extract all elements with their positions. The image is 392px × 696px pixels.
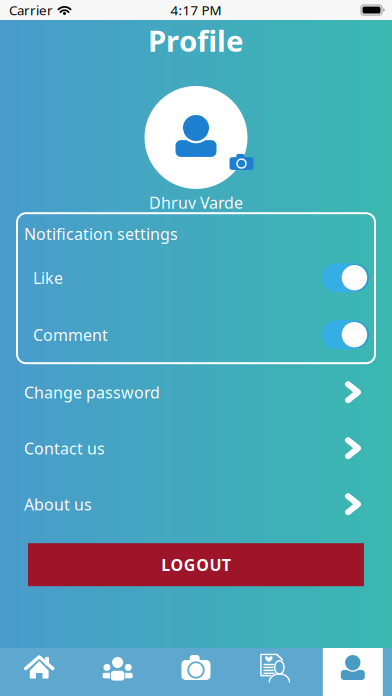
staticText: Comment xyxy=(33,324,108,345)
button[interactable]: Home xyxy=(0,648,78,696)
button[interactable]: Camera xyxy=(157,648,235,696)
staticText: Profile xyxy=(148,21,244,60)
staticText: Notification settings xyxy=(24,223,178,244)
staticText: Contact us xyxy=(24,438,105,459)
button[interactable]: Change profile photo xyxy=(144,86,247,189)
button[interactable]: Feed xyxy=(235,648,314,696)
button[interactable]: LOGOUT xyxy=(28,543,364,586)
staticText: 4:17 PM xyxy=(170,1,221,19)
staticText: About us xyxy=(24,494,92,515)
button[interactable]: Change password xyxy=(0,364,392,420)
button[interactable]: Profile xyxy=(314,648,392,696)
staticText: Like xyxy=(33,267,63,288)
button[interactable]: About us xyxy=(0,476,392,532)
staticText: Carrier xyxy=(9,1,53,19)
staticText: Change password xyxy=(24,382,160,403)
button[interactable]: Contact us xyxy=(0,420,392,476)
button[interactable]: Comment notifications xyxy=(322,320,369,349)
button[interactable]: Friends xyxy=(78,648,157,696)
staticText: LOGOUT xyxy=(161,554,231,575)
button[interactable]: Like notifications xyxy=(322,263,369,292)
staticText: Dhruv Varde xyxy=(149,192,243,213)
